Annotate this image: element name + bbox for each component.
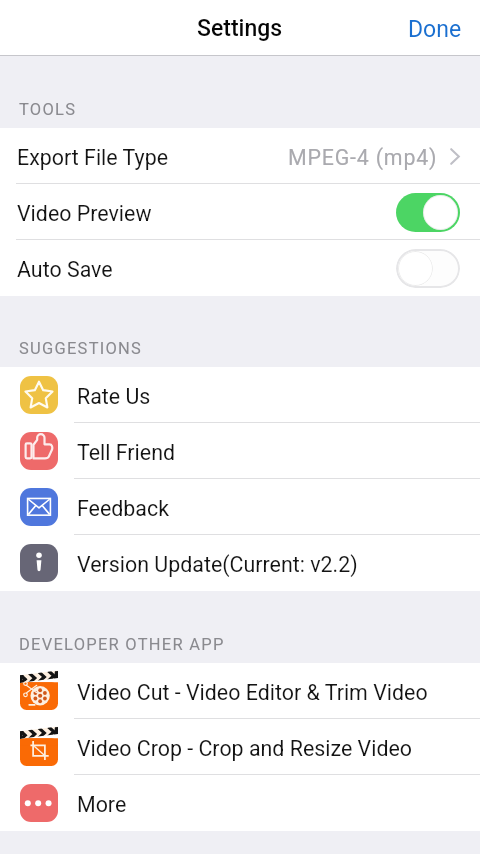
staticText: SUGGESTIONS [19,339,143,358]
staticText: Video Cut - Video Editor & Trim Video [77,680,428,705]
button[interactable]: Auto Save [0,240,480,296]
button[interactable]: Export File Type [0,128,480,184]
staticText: Export File Type [17,145,168,170]
button[interactable]: Toggle off [396,249,460,288]
staticText: More [77,792,127,817]
button[interactable]: Tell Friend [0,423,480,479]
button[interactable]: Video Preview [0,184,480,240]
button[interactable]: Video Cut [0,663,480,719]
staticText: DEVELOPER OTHER APP [19,635,225,654]
staticText: Rate Us [77,384,151,409]
button[interactable]: Video Crop [0,719,480,775]
button[interactable]: Rate Us [0,367,480,423]
button[interactable]: Done [394,0,480,56]
button[interactable]: Feedback [0,479,480,535]
staticText: Done [408,16,462,43]
staticText: Version Update(Current: v2.2) [77,552,358,577]
staticText: MPEG-4 (mp4) [288,145,438,170]
staticText: Tell Friend [77,440,176,465]
button[interactable]: Version [0,535,480,591]
staticText: Feedback [77,496,170,521]
staticText: Auto Save [17,257,113,282]
button[interactable]: Toggle on [396,193,460,232]
staticText: Video Crop - Crop and Resize Video [77,736,413,761]
staticText: Settings [197,15,283,42]
staticText: TOOLS [19,100,77,119]
staticText: Video Preview [17,201,152,226]
button[interactable]: More [0,775,480,831]
